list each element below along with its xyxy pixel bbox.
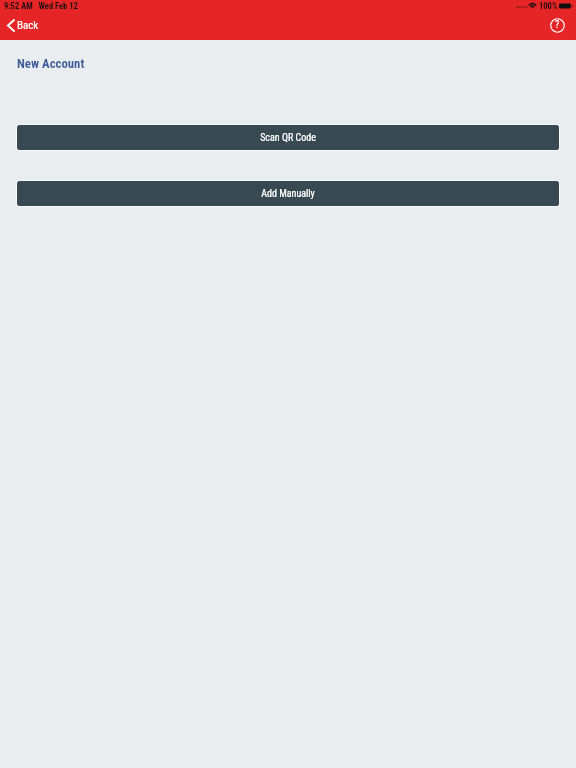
staticText: New Account: [17, 56, 85, 71]
staticText: Scan QR Code: [260, 132, 316, 144]
button[interactable]: Scan QR Code: [17, 125, 559, 150]
staticText: ?: [555, 19, 560, 31]
button[interactable]: Add Manually: [17, 181, 559, 206]
staticText: 9:52 AM Wed Feb 12: [4, 1, 78, 11]
staticText: Add Manually: [261, 188, 315, 200]
staticText: Back: [17, 19, 39, 32]
button[interactable]: Help: [544, 12, 570, 38]
button[interactable]: Back: [3, 17, 43, 34]
staticText: 100%: [539, 1, 558, 11]
